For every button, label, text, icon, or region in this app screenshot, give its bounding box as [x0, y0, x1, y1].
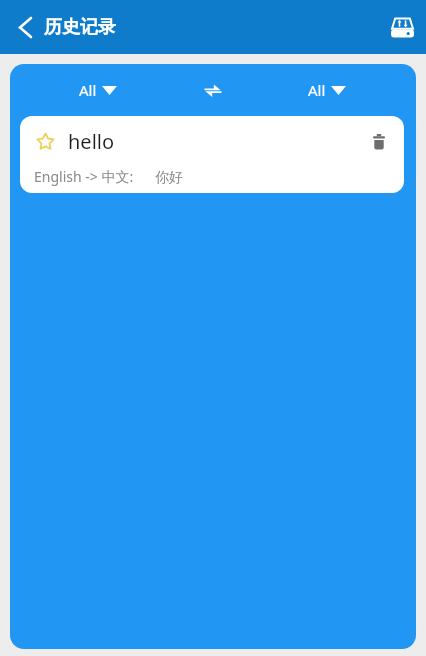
staticText: 历史记录 — [44, 16, 116, 39]
button[interactable] — [13, 15, 37, 39]
button[interactable]: All — [79, 80, 117, 100]
button[interactable] — [371, 134, 387, 150]
staticText: hello — [68, 128, 115, 155]
staticText: All — [308, 80, 326, 100]
button[interactable] — [37, 133, 54, 150]
button[interactable] — [201, 78, 225, 102]
staticText: All — [79, 80, 97, 100]
staticText: English -> 中文: 你好 — [34, 167, 184, 186]
button[interactable] — [389, 14, 415, 40]
button[interactable]: hello — [20, 116, 404, 193]
button[interactable]: All — [308, 80, 346, 100]
